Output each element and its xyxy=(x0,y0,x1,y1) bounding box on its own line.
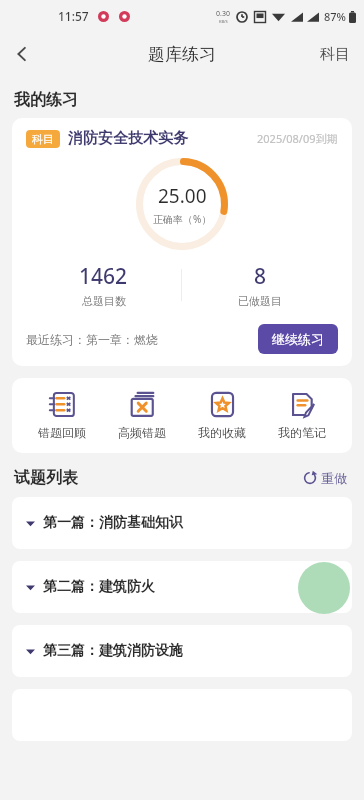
staticText: 题库练习 xyxy=(148,44,216,65)
staticText: 0.30 xyxy=(216,9,230,19)
staticText: 科目 xyxy=(32,132,54,146)
button[interactable]: 重做 xyxy=(300,467,350,489)
staticText: 87% xyxy=(324,9,346,24)
staticText: 总题目数 xyxy=(82,294,126,308)
staticText: 我的笔记 xyxy=(278,425,326,440)
staticText: 错题回顾 xyxy=(38,425,86,440)
button[interactable]: 第二篇：建筑防火 xyxy=(12,561,352,613)
staticText: 正确率（%） xyxy=(153,212,212,226)
staticText: 第一篇：消防基础知识 xyxy=(43,514,183,532)
button[interactable]: 我的笔记 xyxy=(272,391,332,440)
staticText: 已做题目 xyxy=(238,294,282,308)
staticText: 消防安全技术实务 xyxy=(68,129,188,148)
button[interactable]: 第三篇：建筑消防设施 xyxy=(12,625,352,677)
staticText: 25.00 xyxy=(158,183,207,209)
staticText: 8 xyxy=(254,262,267,291)
staticText: 1462 xyxy=(79,262,128,291)
staticText: 第二篇：建筑防火 xyxy=(43,578,155,596)
button[interactable]: 我的收藏 xyxy=(192,391,252,440)
button[interactable]: 继续练习 xyxy=(258,324,338,354)
staticText: 重做 xyxy=(321,470,347,486)
button[interactable]: 返回 xyxy=(0,32,44,76)
button[interactable]: 高频错题 xyxy=(112,391,172,440)
staticText: 最近练习：第一章：燃烧 xyxy=(26,332,158,347)
button[interactable]: 第一篇：消防基础知识 xyxy=(12,497,352,549)
staticText: 科目 xyxy=(320,45,350,64)
staticText: 试题列表 xyxy=(14,468,78,488)
staticText: KB/S xyxy=(219,19,228,24)
staticText: 2025/08/09到期 xyxy=(257,131,338,146)
staticText: 高频错题 xyxy=(118,425,166,440)
button[interactable]: 科目 xyxy=(306,32,364,76)
button[interactable]: 科目 xyxy=(12,118,352,366)
staticText: 第三篇：建筑消防设施 xyxy=(43,642,183,660)
staticText: 我的练习 xyxy=(14,90,78,110)
staticText: 我的收藏 xyxy=(198,425,246,440)
staticText: 继续练习 xyxy=(272,331,324,347)
staticText: 11:57 xyxy=(58,8,89,24)
button[interactable]: 错题回顾 xyxy=(32,391,92,440)
